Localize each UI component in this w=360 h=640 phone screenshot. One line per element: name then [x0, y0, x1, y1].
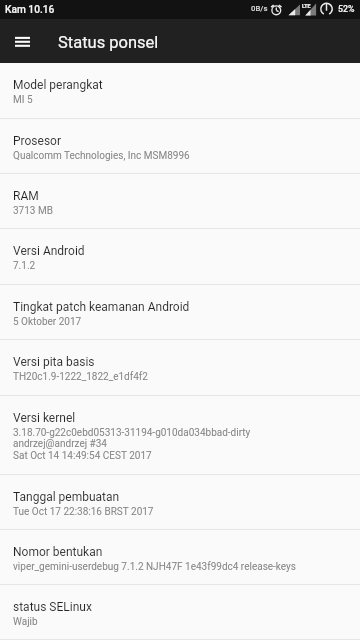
staticText: Kam 10.16 — [5, 4, 55, 16]
staticText: Nomor bentukan — [13, 545, 103, 559]
button[interactable]: Versi kernel — [0, 396, 360, 474]
button[interactable]: status SELinux — [0, 585, 360, 640]
staticText: viper_gemini-userdebug 7.1.2 NJH47F 1e43… — [13, 561, 296, 573]
staticText: RAM — [13, 189, 39, 203]
staticText: LTE — [302, 3, 311, 9]
button[interactable]: Tanggal pembuatan — [0, 475, 360, 529]
button[interactable]: Nomor bentukan — [0, 530, 360, 584]
staticText: status SELinux — [13, 600, 92, 614]
staticText: 7.1.2 — [13, 260, 36, 272]
staticText: Versi Android — [13, 244, 85, 258]
staticText: 5 Oktober 2017 — [13, 316, 82, 328]
staticText: Tingkat patch keamanan Android — [13, 300, 190, 314]
button[interactable]: Prosesor — [0, 119, 360, 173]
staticText: Status ponsel — [58, 33, 159, 52]
staticText: 0B/s — [251, 4, 268, 13]
staticText: andrzej@andrzej #34 — [13, 438, 107, 450]
staticText: 52% — [338, 4, 355, 14]
button[interactable]: Tingkat patch keamanan Android — [0, 285, 360, 339]
staticText: Sat Oct 14 14:49:54 CEST 2017 — [13, 450, 152, 462]
staticText: Wajib — [13, 616, 38, 628]
staticText: Model perangkat — [13, 78, 103, 92]
button[interactable]: Open navigation menu — [0, 19, 45, 63]
staticText: 3.18.70-g22c0ebd05313-31194-g010da034bba… — [13, 427, 251, 439]
staticText: Versi kernel — [13, 411, 76, 425]
staticText: Qualcomm Technologies, Inc MSM8996 — [13, 150, 190, 162]
staticText: Versi pita basis — [13, 355, 95, 369]
button[interactable]: Model perangkat — [0, 63, 360, 118]
staticText: Prosesor — [13, 134, 62, 148]
staticText: 3713 MB — [13, 205, 53, 217]
button[interactable]: Versi Android — [0, 229, 360, 284]
staticText: TH20c1.9-1222_1822_e1df4f2 — [13, 371, 148, 383]
button[interactable]: RAM — [0, 174, 360, 228]
staticText: Tanggal pembuatan — [13, 490, 120, 504]
staticText: Tue Oct 17 22:38:16 BRST 2017 — [13, 506, 154, 518]
staticText: MI 5 — [13, 94, 33, 106]
button[interactable]: Versi pita basis — [0, 340, 360, 395]
